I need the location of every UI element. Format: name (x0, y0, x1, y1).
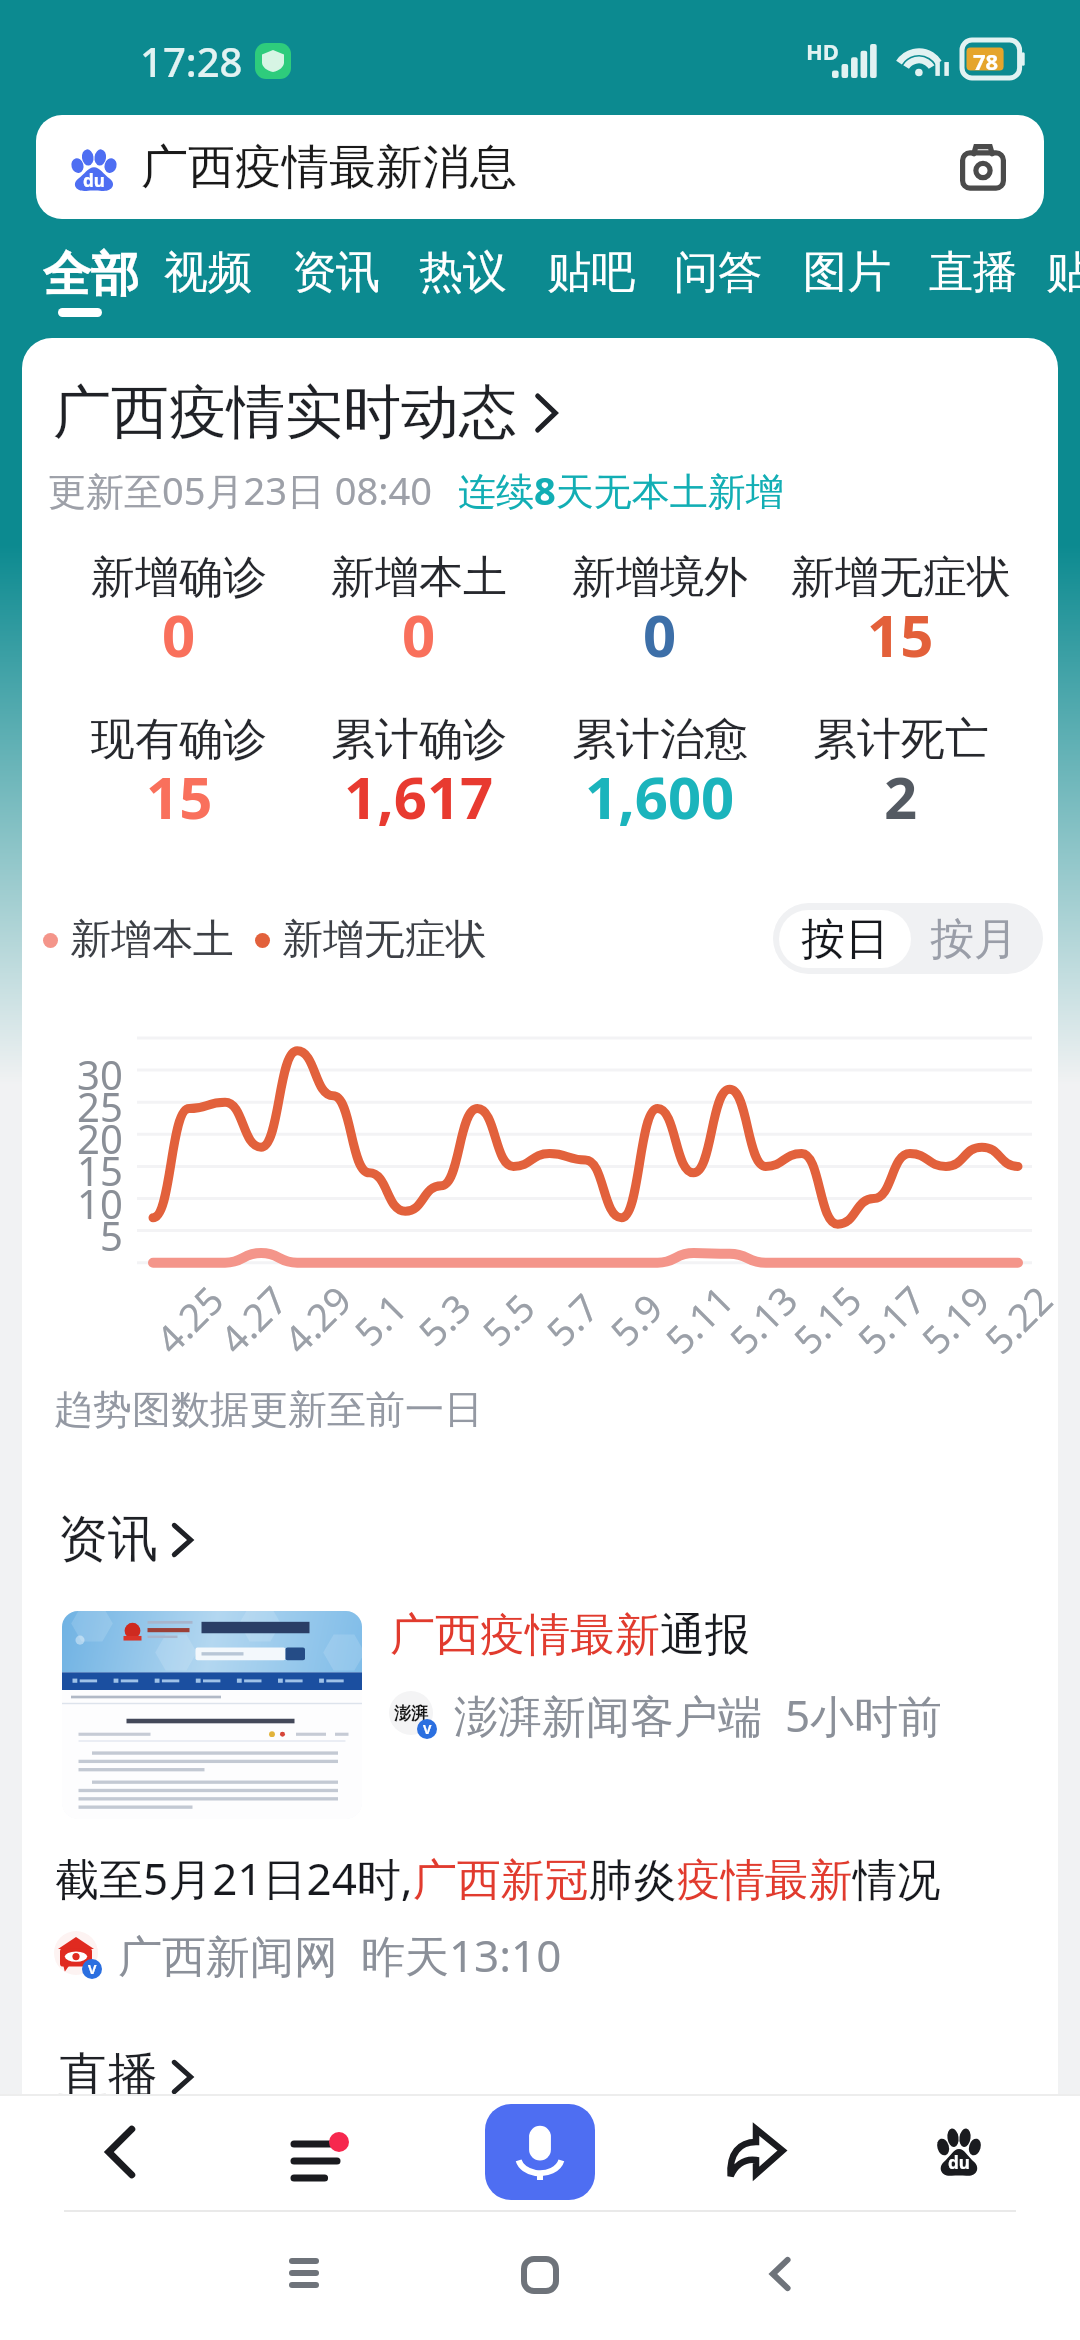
staticText: 新增境外 (572, 550, 748, 605)
button[interactable]: Share (648, 2104, 864, 2200)
staticText: 广西新闻网 昨天13:10 (118, 1925, 562, 1985)
staticText: 直播 (929, 245, 1017, 300)
button[interactable]: 按月 (911, 910, 1037, 968)
staticText: 资讯 (292, 245, 380, 300)
staticText: 全部 (43, 245, 139, 305)
staticText: 5.3 (406, 1281, 481, 1356)
button[interactable]: Camera search (942, 126, 1024, 208)
staticText: du (83, 169, 105, 192)
button[interactable]: Baidu home (864, 2104, 1080, 2200)
staticText: 5.9 (598, 1281, 673, 1356)
button[interactable]: Voice search (485, 2104, 595, 2200)
staticText: 5 (100, 1208, 123, 1254)
staticText: 5.17 (846, 1274, 936, 1364)
staticText: 新增无症状 (791, 550, 1011, 605)
button[interactable]: 直播 (913, 245, 1029, 349)
staticText: 5.15 (782, 1274, 872, 1364)
button[interactable]: 问答 (658, 245, 774, 349)
staticText: 趋势图数据更新至前一日 (54, 1385, 483, 1434)
staticText: 图片 (803, 245, 891, 300)
button[interactable]: 直播 (58, 2045, 194, 2094)
staticText: 新增本土 (331, 550, 507, 605)
staticText: V (88, 1960, 97, 1978)
staticText: 澎湃 (394, 1703, 428, 1724)
button[interactable]: 贴 (1030, 245, 1080, 349)
staticText: 澎湃新闻客户端 5小时前 (454, 1685, 943, 1745)
button[interactable]: 图片 (787, 245, 903, 349)
staticText: 0 (402, 595, 436, 674)
staticText: 5.7 (534, 1281, 609, 1356)
button[interactable]: Menu (216, 2104, 432, 2200)
staticText: 现有确诊 (91, 712, 267, 767)
staticText: 新增本土 (70, 914, 234, 966)
staticText: 5.5 (470, 1281, 545, 1356)
staticText: 0 (643, 595, 677, 674)
button[interactable]: Back (0, 2104, 216, 2200)
button[interactable]: 资讯 (58, 1508, 194, 1571)
button[interactable]: 按日 (779, 910, 911, 968)
staticText: 新增确诊 (91, 550, 267, 605)
staticText: 2 (884, 757, 918, 836)
staticText: 直播 (58, 2045, 158, 2094)
staticText: 0 (162, 595, 196, 674)
staticText: 15 (77, 1143, 123, 1189)
staticText: 5.22 (973, 1274, 1058, 1364)
staticText: 20 (77, 1111, 123, 1157)
staticText: 30 (77, 1047, 123, 1093)
staticText: 贴吧 (547, 245, 635, 300)
staticText: 更新至05月23日 08:40 (48, 464, 432, 516)
button[interactable]: du (36, 115, 1044, 219)
staticText: 5.11 (654, 1274, 744, 1364)
staticText: 广西疫情实时动态 (53, 376, 517, 449)
staticText: 10 (77, 1176, 123, 1222)
staticText: 15 (146, 757, 213, 836)
staticText: 1,600 (585, 757, 735, 836)
staticText: 5.19 (910, 1274, 1000, 1364)
button[interactable]: 热议 (403, 245, 519, 349)
staticText: 5.13 (718, 1274, 808, 1364)
staticText: 贴 (1046, 245, 1080, 300)
staticText: 资讯 (58, 1508, 158, 1571)
button[interactable]: 广西疫情最新通报 (390, 1607, 750, 1664)
button[interactable]: 资讯 (276, 245, 392, 349)
staticText: du (948, 2151, 970, 2174)
staticText: 视频 (164, 245, 252, 300)
staticText: 新增无症状 (282, 914, 487, 966)
button[interactable]: 广西疫情实时动态 (53, 376, 559, 449)
staticText: 累计确诊 (331, 712, 507, 767)
staticText: 累计死亡 (813, 712, 989, 767)
staticText: 4.29 (272, 1274, 362, 1364)
staticText: 25 (77, 1079, 123, 1125)
staticText: V (423, 1720, 432, 1738)
button[interactable]: 视频 (148, 245, 264, 349)
staticText: 按日 (801, 912, 889, 967)
staticText: 按月 (930, 912, 1018, 967)
staticText: 4.25 (144, 1274, 234, 1364)
staticText: 78 (973, 46, 999, 76)
staticText: 问答 (674, 245, 762, 300)
button[interactable]: 截至5月21日24时,广西新冠肺炎疫情最新情况 (55, 1848, 941, 1908)
staticText: HD (806, 36, 839, 66)
staticText: 5.1 (342, 1281, 417, 1356)
staticText: 15 (867, 595, 934, 674)
button[interactable]: 全部 (27, 245, 143, 349)
staticText: 4.27 (208, 1274, 298, 1364)
button[interactable]: 贴吧 (531, 245, 647, 349)
staticText: 累计治愈 (572, 712, 748, 767)
staticText: 广西疫情最新消息 (141, 138, 517, 197)
staticText: 连续8天无本土新增 (458, 464, 784, 516)
staticText: 17:28 (140, 34, 243, 88)
staticText: 热议 (419, 245, 507, 300)
staticText: 1,617 (344, 757, 494, 836)
